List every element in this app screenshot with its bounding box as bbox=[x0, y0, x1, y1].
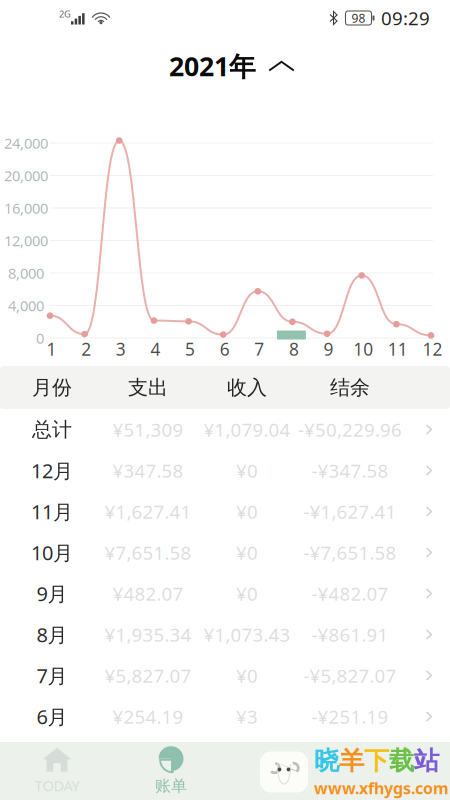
staticText: ¥482.07 bbox=[112, 581, 183, 606]
staticText: ¥51,309 bbox=[112, 417, 183, 442]
button[interactable]: 2021年 bbox=[169, 43, 295, 89]
button[interactable]: 12月 bbox=[0, 450, 450, 491]
staticText: 11 bbox=[388, 337, 408, 360]
staticText: ¥347.58 bbox=[112, 458, 183, 483]
staticText: 9月 bbox=[36, 580, 67, 607]
staticText: 2G bbox=[59, 8, 71, 20]
button[interactable]: 总计 bbox=[0, 409, 450, 450]
staticText: 4,000 bbox=[8, 296, 44, 315]
staticText: 站 bbox=[414, 745, 439, 776]
staticText: 16,000 bbox=[4, 198, 48, 218]
staticText: 7月 bbox=[36, 662, 67, 689]
staticText: 羊 bbox=[339, 745, 364, 776]
button[interactable]: 7月 bbox=[0, 655, 450, 696]
button[interactable]: 8月 bbox=[0, 614, 450, 655]
staticText: 24,000 bbox=[4, 133, 48, 153]
staticText: 12,000 bbox=[4, 231, 48, 250]
staticText: 10 bbox=[353, 337, 373, 360]
staticText: 收入 bbox=[227, 375, 267, 400]
button[interactable]: 11月 bbox=[0, 491, 450, 532]
staticText: 9 bbox=[324, 337, 334, 360]
staticText: -¥861.91 bbox=[311, 622, 388, 647]
staticText: 月份 bbox=[32, 375, 72, 400]
staticText: 0 bbox=[36, 328, 44, 348]
staticText: 载 bbox=[389, 745, 414, 776]
staticText: ¥254.19 bbox=[112, 704, 183, 729]
staticText: 8月 bbox=[36, 621, 67, 648]
staticText: 总计 bbox=[32, 417, 72, 442]
staticText: -¥50,229.96 bbox=[298, 417, 402, 442]
staticText: ¥7,651.58 bbox=[104, 540, 191, 565]
staticText: 4 bbox=[150, 337, 160, 360]
staticText: ¥5,827.07 bbox=[104, 663, 191, 688]
staticText: 8,000 bbox=[8, 263, 44, 283]
staticText: ¥1,073.43 bbox=[203, 622, 290, 647]
staticText: ¥3 bbox=[236, 704, 258, 729]
staticText: ¥1,627.41 bbox=[104, 499, 191, 524]
staticText: ¥0 bbox=[236, 458, 258, 483]
staticText: 下 bbox=[364, 745, 389, 776]
staticText: ¥1,079.04 bbox=[203, 417, 290, 442]
staticText: ¥0 bbox=[236, 663, 258, 688]
staticText: 7 bbox=[254, 337, 264, 360]
staticText: ¥1,935.34 bbox=[104, 622, 191, 647]
button[interactable]: 10月 bbox=[0, 532, 450, 573]
staticText: 12 bbox=[422, 337, 442, 360]
staticText: 12月 bbox=[31, 457, 73, 484]
button[interactable]: 6月 bbox=[0, 696, 450, 737]
staticText: 晓 bbox=[314, 745, 339, 776]
staticText: -¥7,651.58 bbox=[303, 540, 396, 565]
staticText: www.xfhygs.com bbox=[314, 777, 449, 799]
staticText: 98 bbox=[351, 10, 365, 26]
staticText: 结余 bbox=[330, 375, 370, 400]
staticText: 1 bbox=[46, 337, 56, 360]
staticText: 6月 bbox=[36, 703, 67, 730]
staticText: TODAY bbox=[34, 776, 79, 795]
staticText: 8 bbox=[289, 337, 299, 360]
staticText: 支出 bbox=[128, 375, 168, 400]
staticText: -¥347.58 bbox=[311, 458, 388, 483]
button[interactable]: 账单 bbox=[114, 742, 228, 800]
staticText: 6 bbox=[220, 337, 230, 360]
staticText: 账单 bbox=[155, 776, 187, 796]
staticText: ¥0 bbox=[236, 581, 258, 606]
button[interactable]: 9月 bbox=[0, 573, 450, 614]
staticText: 2 bbox=[81, 337, 91, 360]
staticText: ¥0 bbox=[236, 499, 258, 524]
staticText: -¥5,827.07 bbox=[303, 663, 396, 688]
staticText: -¥482.07 bbox=[311, 581, 388, 606]
staticText: ¥0 bbox=[236, 540, 258, 565]
staticText: 20,000 bbox=[4, 166, 48, 185]
staticText: 3 bbox=[116, 337, 126, 360]
staticText: 10月 bbox=[31, 539, 73, 566]
staticText: 11月 bbox=[31, 498, 73, 525]
staticText: -¥251.19 bbox=[311, 704, 388, 729]
staticText: 5 bbox=[185, 337, 195, 360]
staticText: -¥1,627.41 bbox=[303, 499, 396, 524]
button[interactable]: TODAY bbox=[0, 742, 114, 800]
staticText: 2021年 bbox=[169, 48, 256, 84]
staticText: 09:29 bbox=[381, 6, 430, 30]
